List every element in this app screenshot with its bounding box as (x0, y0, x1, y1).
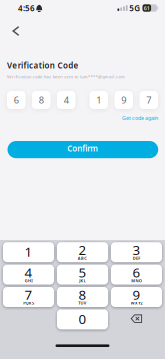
staticText: 2 (78, 241, 86, 259)
staticText: PQRS (23, 300, 34, 306)
staticText: TUV (78, 300, 87, 306)
staticText: GHI (25, 278, 32, 283)
button[interactable]: 2 (57, 242, 108, 262)
staticText: MNO (131, 278, 142, 283)
staticText: Verification Code (7, 60, 79, 71)
staticText: 3 (132, 241, 140, 259)
button[interactable]: 8 (57, 287, 108, 307)
staticText: 0 (78, 310, 86, 328)
staticText: 4 (24, 263, 32, 281)
button[interactable]: 6 (111, 265, 162, 285)
button[interactable]: 0 (57, 309, 108, 329)
staticText: 1 (96, 94, 101, 106)
button[interactable]: 5 (57, 265, 108, 285)
button[interactable]: Confirm (7, 141, 158, 158)
staticText: ABC (78, 255, 87, 261)
staticText: 5G (129, 3, 140, 13)
staticText: Verification code has been sent to lum**… (7, 74, 125, 79)
staticText: 4:56 (18, 3, 35, 13)
staticText: WXYZ (131, 300, 142, 306)
staticText: 5 (78, 263, 86, 281)
staticText: Confirm (67, 143, 98, 154)
button[interactable]: 3 (111, 242, 162, 262)
button[interactable]: 4 (3, 265, 54, 285)
staticText: 61 (144, 5, 150, 12)
button[interactable]: Back (8, 22, 24, 40)
staticText: 4 (64, 94, 69, 106)
button[interactable]: Get code again (122, 114, 158, 122)
staticText: 7 (24, 286, 32, 303)
staticText: JKL (79, 278, 86, 283)
staticText: 8 (78, 286, 86, 303)
button[interactable]: Delete (111, 309, 162, 329)
staticText: 6 (132, 263, 140, 281)
button[interactable]: 1 (3, 242, 54, 262)
staticText: DEF (133, 255, 140, 261)
staticText: 9 (132, 286, 140, 303)
staticText: Get code again (122, 114, 158, 122)
staticText: 7 (146, 94, 151, 106)
button[interactable]: 9 (111, 287, 162, 307)
staticText: 9 (121, 94, 126, 106)
staticText: 1 (24, 243, 32, 260)
staticText: 8 (39, 94, 44, 106)
button[interactable]: 7 (3, 287, 54, 307)
staticText: 6 (14, 94, 19, 106)
